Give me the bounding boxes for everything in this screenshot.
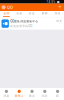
button[interactable]: 联系人 xyxy=(13,88,26,100)
staticText: 其他 xyxy=(55,12,61,15)
button[interactable]: 好友 xyxy=(26,11,38,18)
staticText: QQ团队消息通知中心 xyxy=(10,19,38,23)
staticText: 联系人 xyxy=(15,94,24,98)
button[interactable]: 其他 xyxy=(51,11,64,18)
staticText: 群聊 xyxy=(42,12,48,15)
button[interactable]: 群聊 xyxy=(38,11,51,18)
button[interactable]: 动态 xyxy=(38,88,51,100)
staticText: 好友 xyxy=(29,12,35,15)
staticText: 14:05 xyxy=(46,0,55,3)
staticText: 动态 xyxy=(42,94,48,98)
button[interactable]: QQ团队消息通知中心 xyxy=(0,18,64,30)
button[interactable]: 我 xyxy=(51,88,64,100)
staticText: 我 xyxy=(56,94,59,98)
button[interactable]: 看点 xyxy=(26,88,38,100)
button[interactable]: 全部 xyxy=(0,11,13,18)
staticText: ▮▮ xyxy=(57,0,59,3)
staticText: 昨天 xyxy=(56,19,62,23)
staticText: 看点 xyxy=(29,94,35,98)
staticText: + xyxy=(58,4,61,11)
staticText: 欢迎使用手机QQ xyxy=(10,24,32,28)
staticText: 未读 xyxy=(16,12,22,15)
staticText: 全部 xyxy=(3,12,9,15)
staticText: QQ xyxy=(7,5,13,10)
button[interactable]: 未读 xyxy=(13,11,26,18)
staticText: 消息 xyxy=(3,94,9,98)
button[interactable]: Add xyxy=(58,4,61,11)
button[interactable]: Profile xyxy=(2,5,6,9)
button[interactable]: 消息 xyxy=(0,88,13,100)
